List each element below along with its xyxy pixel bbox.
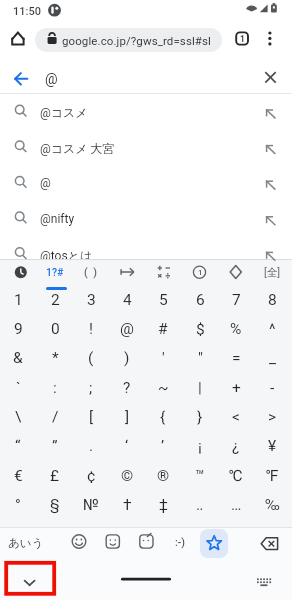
button[interactable]: [73, 490, 109, 519]
button[interactable]: [37, 432, 73, 461]
button[interactable]: [109, 402, 145, 431]
button[interactable]: [145, 344, 181, 373]
button[interactable]: [218, 402, 254, 431]
button[interactable]: [145, 402, 181, 431]
button[interactable]: [145, 314, 181, 343]
button[interactable]: [0, 402, 36, 431]
button[interactable]: [96, 528, 130, 558]
button[interactable]: [182, 490, 218, 519]
button[interactable]: [0, 259, 36, 286]
button[interactable]: [37, 285, 73, 314]
staticText: ‡: [159, 496, 168, 514]
button[interactable]: [0, 461, 36, 490]
button[interactable]: [0, 166, 292, 202]
button[interactable]: [109, 490, 145, 519]
button[interactable]: [0, 490, 36, 519]
button[interactable]: [254, 259, 290, 286]
button[interactable]: [164, 528, 198, 558]
button[interactable]: [109, 432, 145, 461]
button[interactable]: [37, 259, 73, 286]
button[interactable]: [73, 285, 109, 314]
button[interactable]: [218, 344, 254, 373]
button[interactable]: [109, 285, 145, 314]
button[interactable]: [4, 27, 32, 53]
button[interactable]: [109, 314, 145, 343]
button[interactable]: [182, 314, 218, 343]
staticText: \: [15, 408, 22, 426]
button[interactable]: [0, 432, 36, 461]
staticText: 5: [159, 291, 168, 309]
button[interactable]: [73, 344, 109, 373]
button[interactable]: [182, 373, 218, 402]
button[interactable]: [73, 402, 109, 431]
button[interactable]: [109, 461, 145, 490]
button[interactable]: [182, 259, 218, 286]
button[interactable]: [182, 461, 218, 490]
staticText: ”: [52, 437, 58, 455]
button[interactable]: [182, 285, 218, 314]
button[interactable]: [37, 314, 73, 343]
button[interactable]: [62, 528, 96, 558]
button[interactable]: [254, 344, 290, 373]
button[interactable]: [0, 201, 292, 237]
button[interactable]: [218, 432, 254, 461]
button[interactable]: [254, 373, 290, 402]
button[interactable]: [200, 529, 228, 558]
button[interactable]: [248, 570, 280, 594]
button[interactable]: [218, 259, 254, 286]
button[interactable]: [73, 314, 109, 343]
button[interactable]: [256, 62, 286, 94]
button[interactable]: [37, 461, 73, 490]
button[interactable]: [182, 432, 218, 461]
button[interactable]: [145, 432, 181, 461]
button[interactable]: [0, 373, 36, 402]
button[interactable]: [145, 259, 181, 286]
button[interactable]: [232, 27, 256, 53]
button[interactable]: [8, 566, 52, 592]
button[interactable]: [73, 432, 109, 461]
button[interactable]: [109, 259, 145, 286]
button[interactable]: [218, 461, 254, 490]
button[interactable]: [254, 461, 290, 490]
staticText: .: [89, 437, 94, 455]
button[interactable]: [0, 94, 292, 130]
button[interactable]: [35, 28, 222, 52]
button[interactable]: [254, 490, 290, 519]
button[interactable]: [218, 285, 254, 314]
button[interactable]: [0, 237, 292, 273]
button[interactable]: [37, 402, 73, 431]
button[interactable]: [182, 344, 218, 373]
button[interactable]: [255, 528, 287, 558]
button[interactable]: [254, 432, 290, 461]
button[interactable]: [145, 373, 181, 402]
button[interactable]: [0, 314, 36, 343]
staticText: ": [198, 349, 203, 367]
button[interactable]: [218, 373, 254, 402]
button[interactable]: [37, 490, 73, 519]
button[interactable]: [258, 27, 284, 53]
button[interactable]: [254, 314, 290, 343]
button[interactable]: [145, 285, 181, 314]
button[interactable]: [182, 402, 218, 431]
button[interactable]: [254, 285, 290, 314]
button[interactable]: [73, 259, 109, 286]
button[interactable]: [6, 62, 36, 94]
button[interactable]: [0, 344, 36, 373]
staticText: ‘: [125, 437, 129, 455]
button[interactable]: [109, 373, 145, 402]
button[interactable]: [0, 528, 46, 558]
button[interactable]: [37, 344, 73, 373]
button[interactable]: [218, 490, 254, 519]
button[interactable]: [145, 461, 181, 490]
button[interactable]: [73, 373, 109, 402]
button[interactable]: [145, 490, 181, 519]
button[interactable]: [0, 285, 36, 314]
button[interactable]: [0, 130, 292, 166]
button[interactable]: [37, 373, 73, 402]
button[interactable]: [218, 314, 254, 343]
button[interactable]: [109, 344, 145, 373]
button[interactable]: [254, 402, 290, 431]
button[interactable]: [73, 461, 109, 490]
staticText: †: [123, 496, 132, 514]
button[interactable]: [130, 528, 164, 558]
